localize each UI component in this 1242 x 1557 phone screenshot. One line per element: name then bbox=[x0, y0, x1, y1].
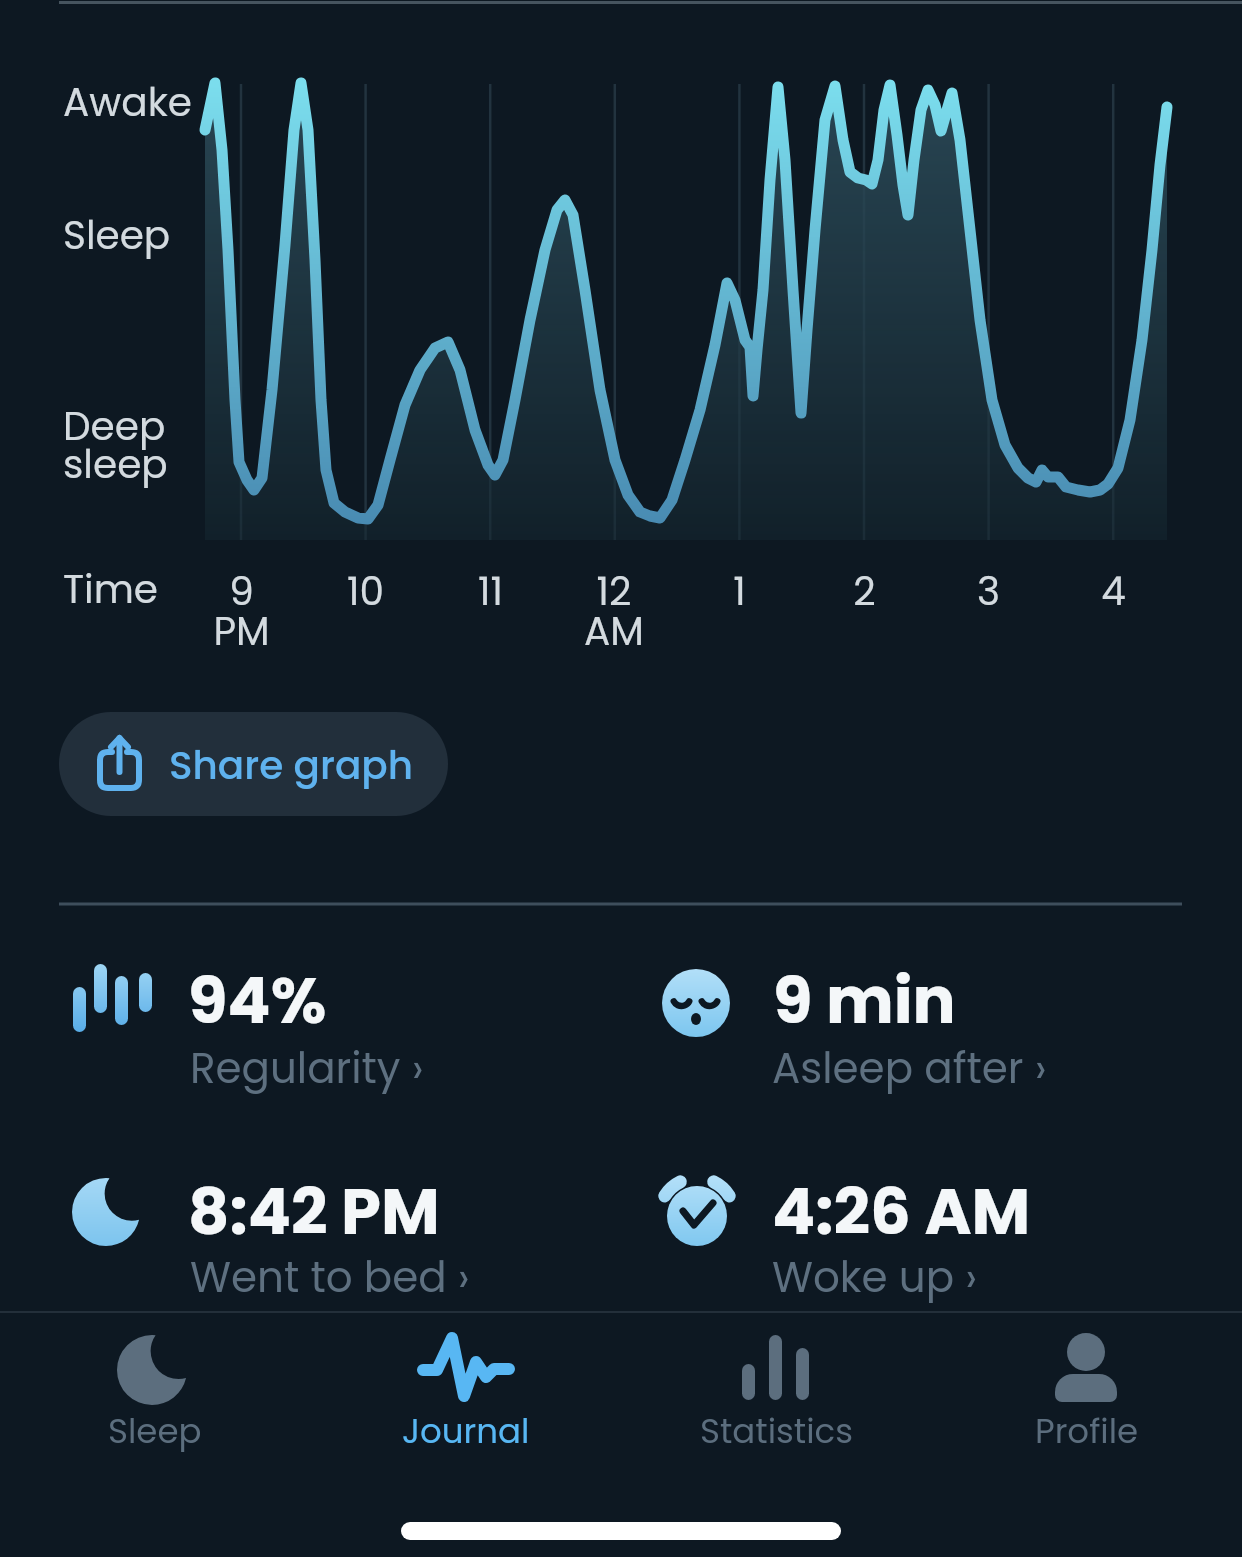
staticText: Profile bbox=[1035, 1407, 1139, 1455]
staticText: 12 AM bbox=[584, 564, 644, 659]
staticText: Deep sleep bbox=[63, 399, 168, 492]
staticText: Asleep after › bbox=[772, 1039, 1047, 1098]
button[interactable]: Journal bbox=[356, 1320, 576, 1460]
staticText: Sleep bbox=[108, 1407, 202, 1455]
staticText: Awake bbox=[63, 75, 192, 130]
button[interactable]: 8:42 PM bbox=[60, 1161, 600, 1311]
button[interactable]: Sleep bbox=[45, 1320, 265, 1460]
button[interactable]: Share graph bbox=[59, 712, 448, 816]
staticText: 4 bbox=[1101, 564, 1126, 619]
staticText: 10 bbox=[347, 564, 384, 619]
staticText: 4:26 AM bbox=[772, 1167, 1031, 1257]
staticText: Regularity › bbox=[190, 1039, 424, 1098]
button[interactable]: Profile bbox=[977, 1320, 1197, 1460]
button[interactable]: 94% bbox=[60, 950, 600, 1100]
staticText: 2 bbox=[853, 564, 876, 619]
staticText: 8:42 PM bbox=[188, 1167, 440, 1257]
staticText: 3 bbox=[977, 564, 1000, 619]
staticText: Went to bed › bbox=[190, 1248, 470, 1307]
staticText: 1 bbox=[733, 564, 746, 619]
staticText: Journal bbox=[402, 1407, 530, 1455]
staticText: Statistics bbox=[700, 1407, 853, 1455]
staticText: 9 PM bbox=[213, 564, 270, 659]
button[interactable]: 9 min bbox=[645, 950, 1205, 1100]
staticText: 94% bbox=[188, 956, 327, 1046]
button[interactable]: Statistics bbox=[666, 1320, 886, 1460]
staticText: Sleep bbox=[63, 208, 171, 263]
staticText: 11 bbox=[478, 564, 503, 619]
staticText: Woke up › bbox=[772, 1248, 978, 1307]
staticText: Time bbox=[63, 562, 159, 617]
button[interactable]: 4:26 AM bbox=[645, 1161, 1205, 1311]
staticText: 9 min bbox=[773, 956, 956, 1046]
staticText: Share graph bbox=[169, 738, 414, 793]
